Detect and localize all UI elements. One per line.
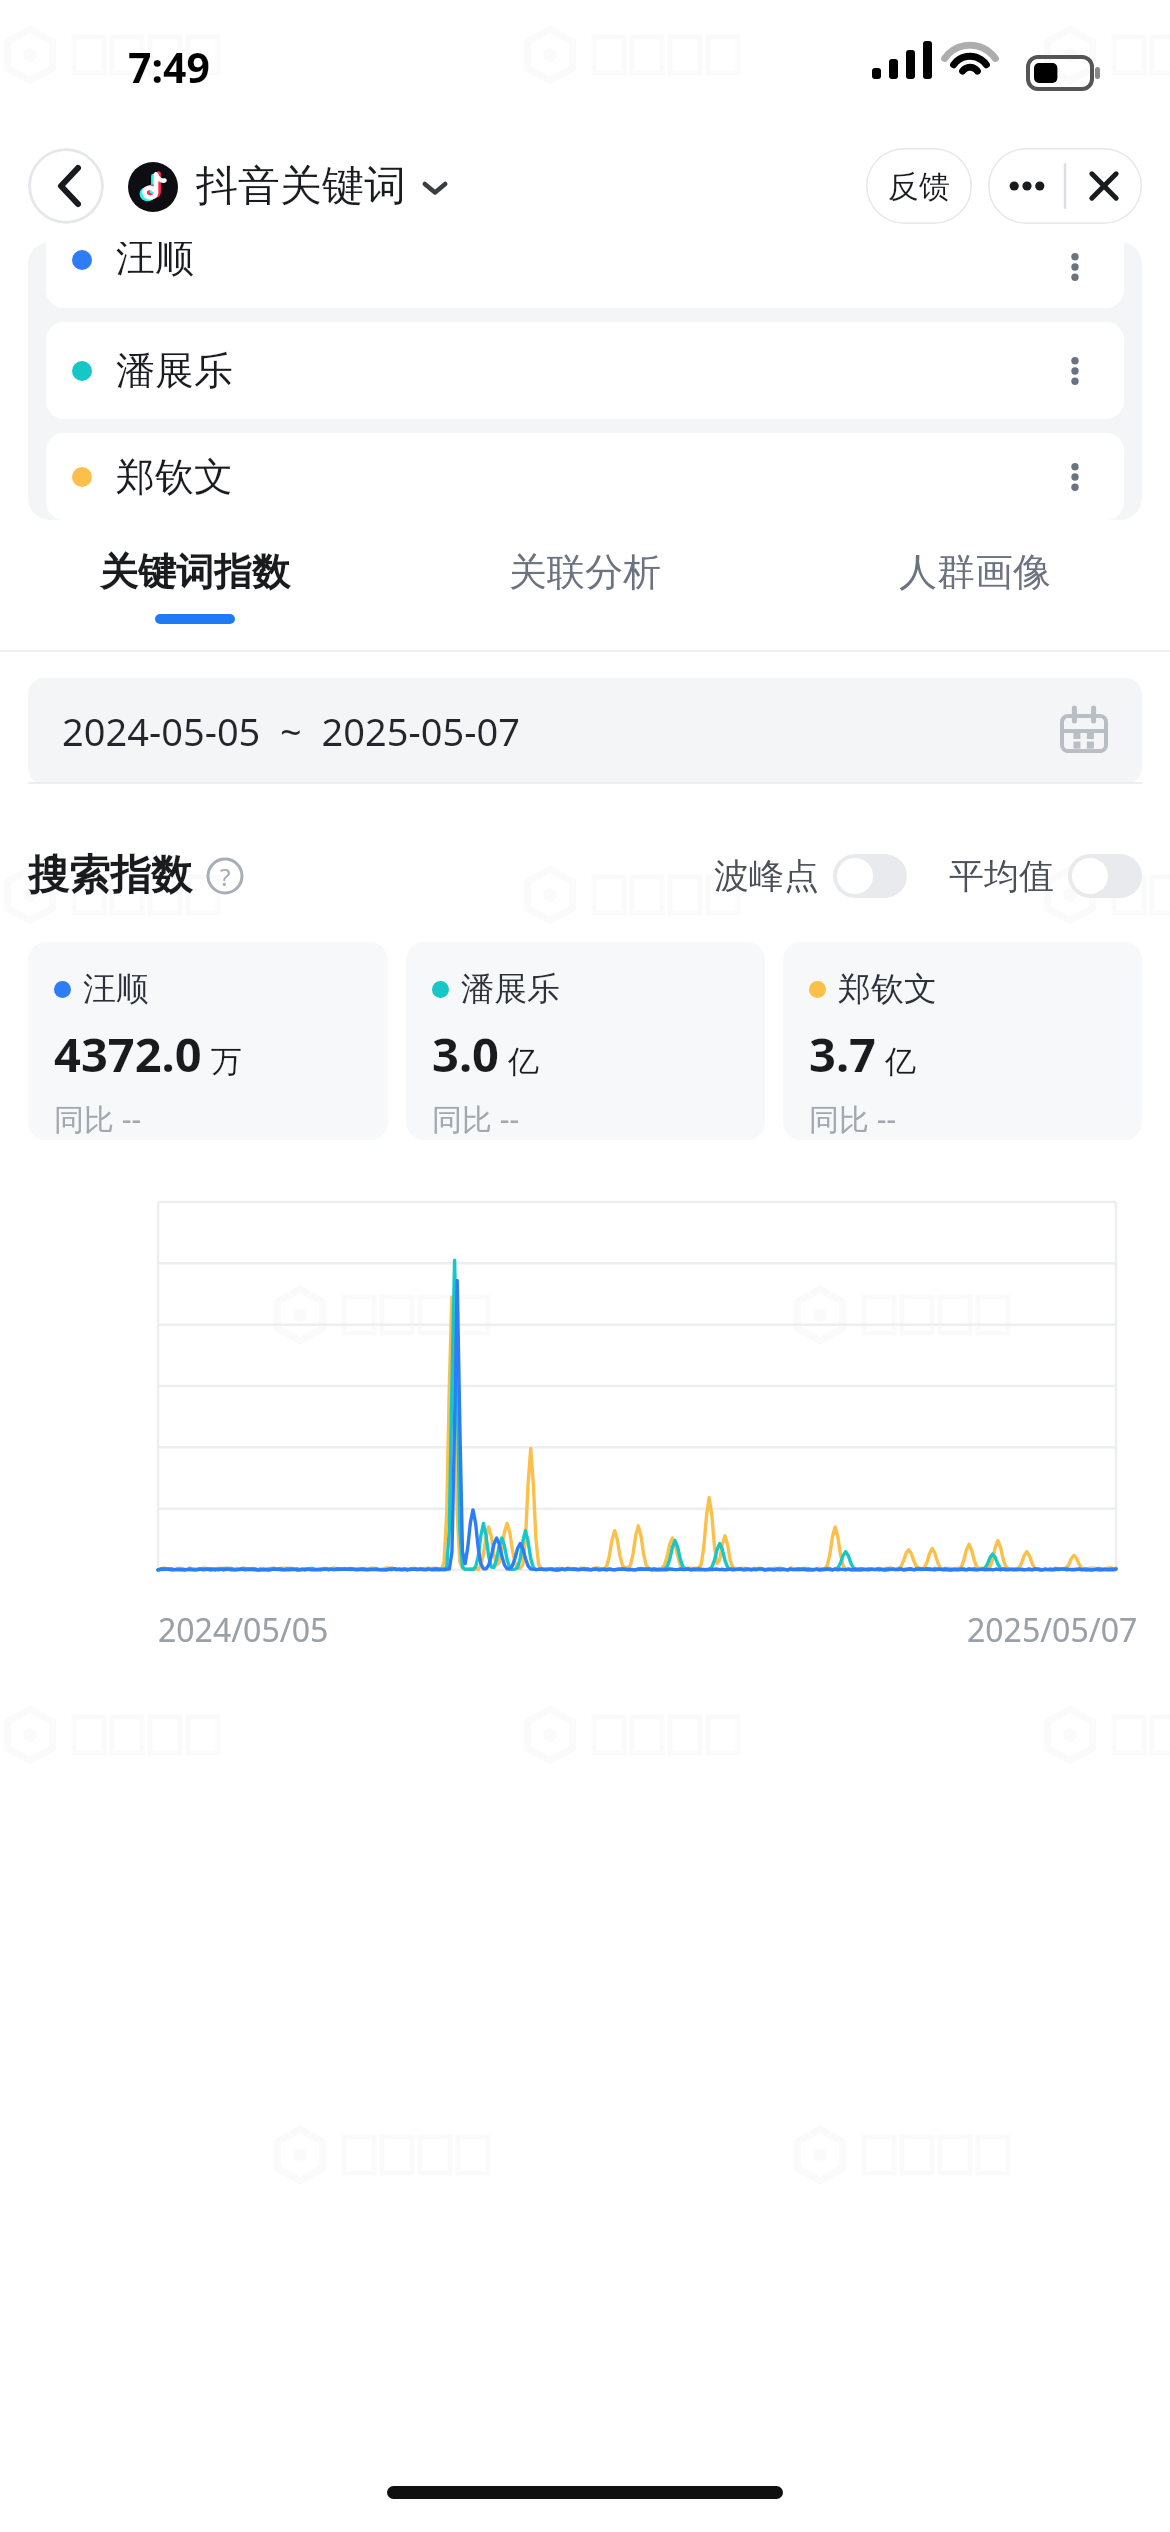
staticText: 关键词指数 xyxy=(100,548,290,596)
staticText: ? xyxy=(220,860,231,893)
staticText: 同比 -- xyxy=(809,1098,897,1139)
staticText: 3.0 xyxy=(432,1022,499,1086)
button[interactable]: 人群画像 xyxy=(780,520,1170,652)
staticText: 汪顺 xyxy=(116,242,194,282)
button[interactable]: More xyxy=(1052,348,1098,394)
staticText: 人群画像 xyxy=(899,548,1051,596)
staticText: 亿 xyxy=(885,1042,916,1081)
staticText: 同比 -- xyxy=(432,1098,520,1139)
staticText: 郑钦文 xyxy=(116,452,233,501)
staticText: 郑钦文 xyxy=(838,968,937,1010)
button[interactable]: More xyxy=(1052,454,1098,500)
button[interactable]: 抖音关键词 xyxy=(128,160,450,213)
button[interactable]: 潘展乐 xyxy=(46,322,1124,419)
staticText: 搜索指数 xyxy=(28,850,192,902)
staticText: 亿 xyxy=(508,1042,539,1081)
button[interactable]: More options xyxy=(988,148,1065,224)
button[interactable]: More xyxy=(1052,244,1098,290)
staticText: 2024-05-05 ~ 2025-05-07 xyxy=(62,705,520,757)
staticText: 抖音关键词 xyxy=(196,160,406,213)
button[interactable]: 汪顺 xyxy=(28,942,388,1140)
button[interactable]: 关键词指数 xyxy=(0,520,390,652)
staticText: 7:49 xyxy=(128,39,210,95)
staticText: 波峰点 xyxy=(714,854,819,898)
button[interactable]: Pick date range xyxy=(1060,707,1108,755)
button[interactable]: 平均值 xyxy=(949,854,1142,898)
button[interactable]: 反馈 xyxy=(866,148,972,224)
staticText: 关联分析 xyxy=(509,548,661,596)
button[interactable]: 汪顺 xyxy=(46,242,1124,308)
button[interactable]: Back xyxy=(28,148,104,224)
staticText: 2025/05/07 xyxy=(967,1608,1138,1652)
button[interactable]: 关联分析 xyxy=(390,520,780,652)
staticText: 3.7 xyxy=(809,1022,876,1086)
staticText: 汪顺 xyxy=(83,968,149,1010)
staticText: 万 xyxy=(211,1042,242,1081)
button[interactable]: 波峰点 xyxy=(714,854,907,898)
staticText: 平均值 xyxy=(949,854,1054,898)
staticText: 2024/05/05 xyxy=(158,1608,329,1652)
button[interactable]: 郑钦文 xyxy=(46,433,1124,520)
button[interactable]: 郑钦文 xyxy=(783,942,1142,1140)
button[interactable]: 2024-05-05 ~ 2025-05-07 xyxy=(28,678,1142,784)
staticText: 潘展乐 xyxy=(116,346,233,395)
button[interactable]: Help xyxy=(206,857,244,895)
button[interactable]: 潘展乐 xyxy=(406,942,765,1140)
staticText: 同比 -- xyxy=(54,1098,142,1139)
button[interactable]: Close xyxy=(1065,148,1142,224)
staticText: 4372.0 xyxy=(54,1022,202,1086)
staticText: 反馈 xyxy=(888,167,950,206)
staticText: 潘展乐 xyxy=(461,968,560,1010)
